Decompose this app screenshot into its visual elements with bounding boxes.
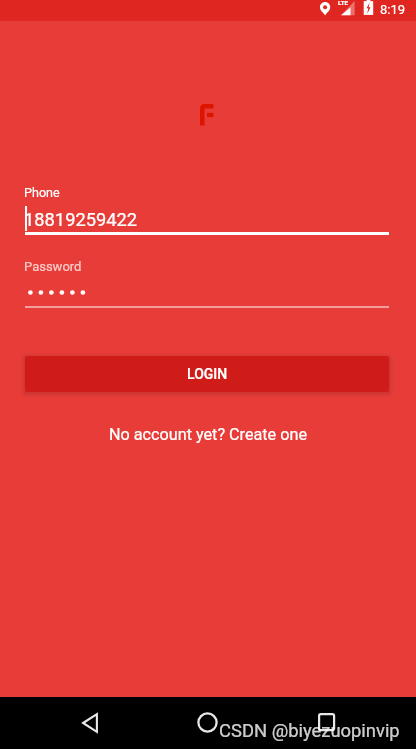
button[interactable]: Back: [68, 701, 112, 745]
staticText: LTE: [338, 0, 349, 6]
staticText: 18819259422: [24, 209, 138, 230]
staticText: CSDN @biyezuopinvip: [219, 720, 400, 742]
staticText: No account yet? Create one: [109, 425, 307, 444]
staticText: 8:19: [380, 2, 406, 17]
button[interactable]: No account yet? Create one: [103, 419, 313, 450]
staticText: Password: [24, 259, 82, 274]
staticText: LOGIN: [187, 366, 228, 382]
button[interactable]: LOGIN: [25, 356, 389, 392]
staticText: Phone: [24, 185, 60, 200]
button[interactable]: Recent apps: [304, 700, 348, 744]
button[interactable]: Home: [185, 700, 229, 744]
